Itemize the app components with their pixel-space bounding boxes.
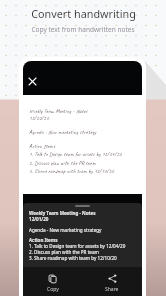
staticText: 2. Discuss plan with the PR team — [29, 249, 99, 255]
staticText: Copy — [47, 286, 59, 293]
staticText: Weekly Team Meeting - Notes — [29, 107, 88, 114]
staticText: Copy text from handwritten notes — [31, 25, 135, 34]
staticText: 1. Talk to Design team for assets by 12/… — [29, 150, 122, 157]
staticText: 3. Share roadmap with team by 12/10/20 — [29, 255, 117, 261]
staticText: 3. Share roadmap with team by 12/10/20 — [29, 167, 114, 174]
button[interactable]: Share — [82, 274, 142, 293]
staticText: Action Items — [29, 237, 58, 243]
button[interactable]: Copy — [23, 274, 82, 293]
staticText: 12/02/20 — [29, 114, 49, 121]
staticText: Convert handwriting — [31, 6, 136, 21]
staticText: 1. Talk to Design team for assets by 12/… — [29, 243, 126, 249]
staticText: Agenda - New marketing strategy — [29, 128, 96, 135]
button[interactable]: Close — [25, 74, 39, 88]
staticText: Share — [105, 286, 119, 293]
staticText: Action Items — [29, 142, 56, 149]
staticText: 2. Discuss plan with the PR team — [29, 159, 96, 166]
staticText: Agenda - New marketing strategy — [29, 227, 102, 233]
staticText: Weekly Team Meeting - Notes — [29, 210, 96, 216]
staticText: 12/01/20 — [29, 216, 49, 222]
